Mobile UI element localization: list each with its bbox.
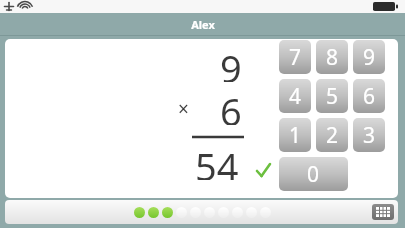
button[interactable]: 8 [316, 40, 348, 74]
staticText: 9 [220, 42, 242, 82]
staticText: Alex [191, 17, 215, 32]
staticText: 1 [289, 121, 302, 150]
button[interactable]: 3 [353, 118, 385, 152]
staticText: 7 [289, 43, 302, 72]
staticText: 6 [363, 82, 376, 111]
button[interactable]: 1 [279, 118, 311, 152]
button[interactable]: Toggle keyboard [372, 204, 394, 220]
staticText: 2 [326, 121, 339, 150]
staticText: 3 [363, 121, 376, 150]
button[interactable]: 6 [353, 79, 385, 113]
button[interactable]: 7 [279, 40, 311, 74]
staticText: 9 [363, 43, 376, 72]
button[interactable]: 4 [279, 79, 311, 113]
staticText: 5 [326, 82, 339, 111]
button[interactable]: 9 [353, 40, 385, 74]
staticText: 8 [326, 43, 339, 72]
staticText: 54 [195, 140, 239, 180]
staticText: 4 [289, 82, 302, 111]
staticText: 0 [307, 160, 320, 189]
button[interactable]: 0 [279, 157, 348, 191]
button[interactable]: 5 [316, 79, 348, 113]
button[interactable]: 2 [316, 118, 348, 152]
staticText: × [178, 96, 189, 116]
staticText: 6 [220, 85, 242, 125]
